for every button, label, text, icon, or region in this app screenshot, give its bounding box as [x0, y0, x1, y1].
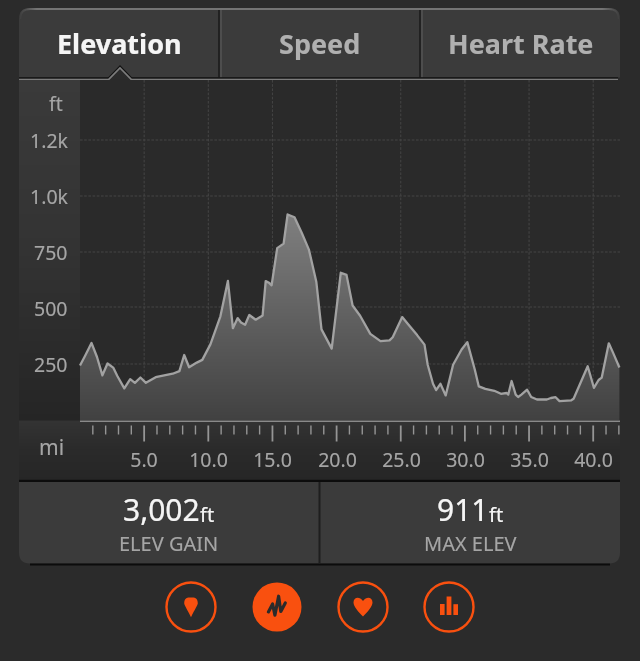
staticText: Speed — [279, 25, 361, 62]
staticText: 1.2k — [30, 127, 68, 154]
staticText: 500 — [34, 295, 68, 322]
button[interactable]: Heart Rate — [421, 8, 620, 79]
staticText: 20.0 — [318, 446, 357, 473]
staticText: 1.0k — [30, 183, 68, 210]
staticText: Elevation — [57, 25, 182, 62]
button[interactable]: 911 — [320, 482, 620, 564]
staticText: 750 — [34, 239, 68, 266]
staticText: 30.0 — [446, 446, 485, 473]
staticText: 911 — [437, 489, 489, 530]
staticText: 25.0 — [382, 446, 421, 473]
staticText: ft — [200, 501, 215, 528]
staticText: ft — [49, 90, 63, 117]
staticText: 5.0 — [130, 446, 158, 473]
button[interactable]: Map — [166, 582, 216, 632]
button[interactable]: Statistics — [424, 582, 474, 632]
staticText: 250 — [34, 351, 68, 378]
button[interactable]: Elevation chart — [252, 582, 302, 632]
button[interactable]: 3,002 — [19, 482, 319, 564]
staticText: ft — [489, 501, 504, 528]
button[interactable]: Speed — [220, 8, 420, 79]
staticText: 10.0 — [189, 446, 228, 473]
staticText: MAX ELEV — [424, 530, 517, 557]
staticText: 15.0 — [253, 446, 292, 473]
staticText: 35.0 — [510, 446, 549, 473]
staticText: 3,002 — [123, 489, 200, 530]
staticText: Heart Rate — [448, 25, 594, 62]
staticText: mi — [39, 433, 65, 462]
staticText: ELEV GAIN — [119, 530, 219, 557]
button[interactable]: Elevation — [19, 8, 219, 79]
button[interactable]: Heart rate — [338, 582, 388, 632]
staticText: 40.0 — [574, 446, 613, 473]
